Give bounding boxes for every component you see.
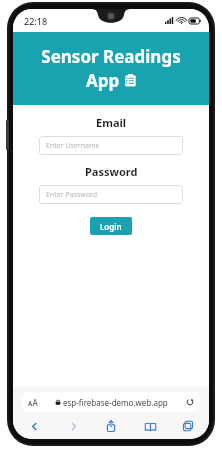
staticText: ᴀA — [28, 397, 38, 408]
staticText: Enter Username — [46, 141, 100, 151]
staticText: 22:18 — [24, 15, 48, 27]
staticText: Email — [96, 115, 127, 130]
staticText: Password — [85, 164, 138, 179]
button[interactable]: Enter Password — [39, 185, 183, 204]
staticText: Sensor Readings — [41, 45, 181, 68]
button[interactable]: Tabs — [177, 415, 199, 437]
button[interactable]: Forward — [62, 415, 84, 437]
button[interactable]: Login — [90, 217, 132, 235]
button[interactable]: Enter Username — [39, 136, 183, 155]
staticText: Enter Password — [46, 190, 98, 200]
button[interactable]: Bookmarks — [139, 415, 161, 437]
button[interactable]: ᴀA — [22, 392, 200, 412]
staticText: App — [86, 69, 120, 92]
staticText: Login — [100, 221, 122, 232]
button[interactable]: Share — [100, 415, 122, 437]
staticText: esp-firebase-demo.web.app — [63, 397, 168, 408]
button[interactable]: Back — [23, 415, 45, 437]
